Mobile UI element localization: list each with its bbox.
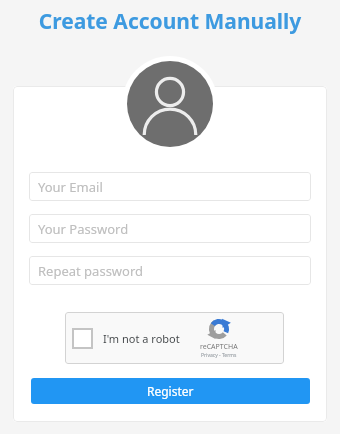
button[interactable]: I'm not a robot checkbox: [72, 328, 93, 349]
other: Profile photo: [122, 56, 218, 152]
staticText: Privacy - Terms: [201, 352, 237, 359]
staticText: Your Email: [38, 178, 103, 196]
staticText: Register: [147, 383, 194, 399]
staticText: I'm not a robot: [103, 331, 180, 346]
staticText: Your Password: [38, 220, 129, 238]
button[interactable]: Repeat password: [29, 256, 311, 285]
staticText: Create Account Manually: [0, 7, 340, 36]
button[interactable]: Register: [31, 378, 310, 404]
button[interactable]: Your Password: [29, 214, 311, 243]
button[interactable]: Your Email: [29, 172, 311, 201]
staticText: reCAPTCHA: [200, 342, 238, 352]
button[interactable]: I'm not a robot checkbox: [65, 312, 284, 364]
staticText: Repeat password: [38, 262, 144, 280]
